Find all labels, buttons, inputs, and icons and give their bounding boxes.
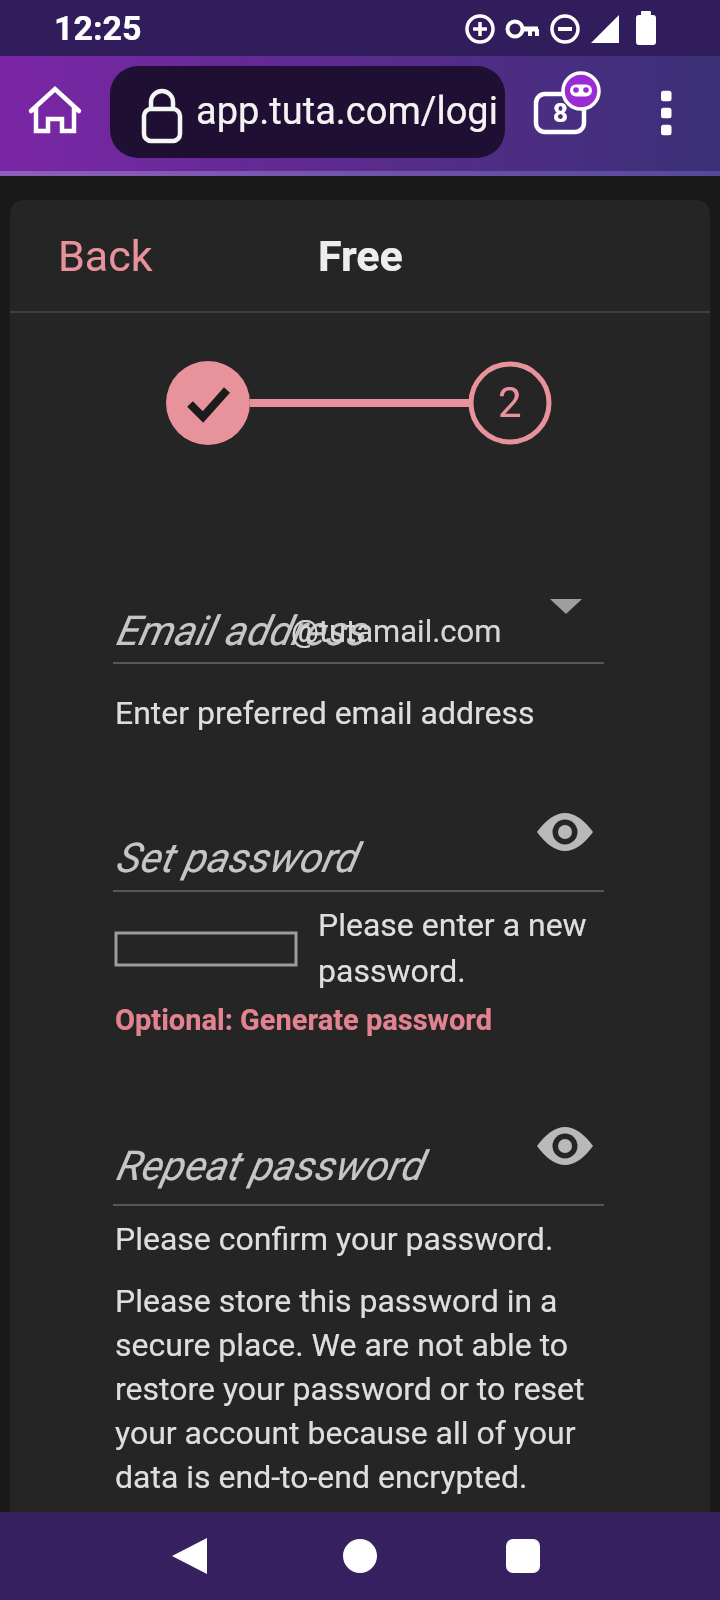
button[interactable]: app.tuta.com/logi [110, 66, 505, 158]
button[interactable] [310, 1516, 410, 1596]
staticText: 12:25 [54, 8, 142, 48]
staticText: Free [318, 231, 403, 281]
staticText: Repeat password [115, 1142, 422, 1190]
staticText: app.tuta.com/logi [196, 89, 498, 134]
button[interactable] [473, 1516, 573, 1596]
button[interactable] [10, 590, 710, 720]
staticText: Back [58, 231, 153, 281]
button[interactable] [23, 81, 87, 145]
button[interactable] [634, 81, 698, 145]
staticText: Please confirm your password. [115, 1220, 554, 1258]
button[interactable] [524, 118, 608, 202]
staticText: @tutamail.com [291, 613, 502, 649]
staticText: Optional: Generate password [115, 1003, 492, 1037]
staticText: Please store this password in a secure p… [115, 1282, 585, 1496]
button[interactable] [140, 1516, 240, 1596]
staticText: Enter preferred email address [115, 694, 535, 732]
staticText: 2 [498, 378, 522, 427]
button[interactable]: Optional: Generate password [110, 998, 497, 1042]
staticText: 8 [553, 98, 568, 128]
staticText: Set password [115, 834, 356, 882]
staticText: Email address [115, 607, 366, 655]
button[interactable]: Back [46, 219, 165, 293]
button[interactable] [10, 820, 710, 910]
staticText: Please enter a new password. [318, 906, 587, 990]
button[interactable] [10, 1130, 710, 1220]
